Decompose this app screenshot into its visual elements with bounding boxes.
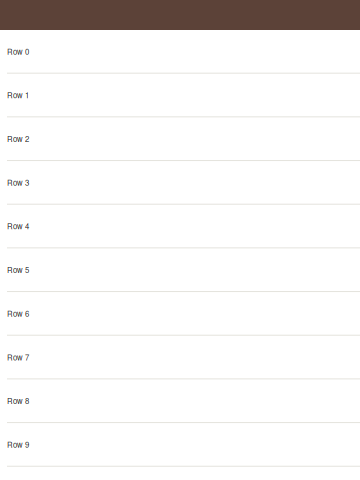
staticText: Row 5 — [7, 264, 29, 275]
staticText: Row 7 — [7, 351, 29, 363]
staticText: Row 9 — [7, 439, 29, 450]
staticText: Row 6 — [7, 308, 29, 319]
staticText: Row 3 — [7, 177, 29, 188]
staticText: Row 4 — [7, 220, 29, 232]
staticText: Row 1 — [7, 89, 29, 101]
staticText: Row 2 — [7, 133, 29, 144]
staticText: Row 8 — [7, 395, 29, 406]
staticText: Row 0 — [7, 46, 29, 57]
